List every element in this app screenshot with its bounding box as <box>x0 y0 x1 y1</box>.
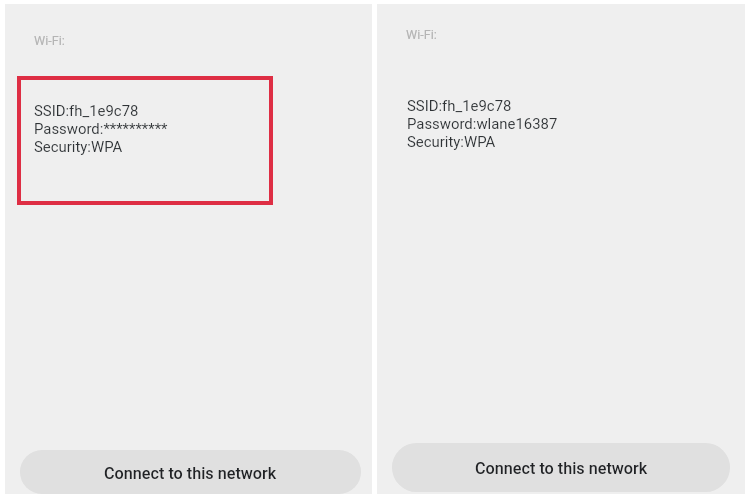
staticText: Wi-Fi: <box>406 28 437 42</box>
staticText: Connect to this network <box>104 464 277 483</box>
staticText: Security:WPA <box>407 133 496 151</box>
staticText: Password:wlane16387 <box>407 115 558 133</box>
staticText: Wi-Fi: <box>34 34 65 48</box>
button[interactable]: Connect to this network <box>20 450 361 494</box>
staticText: SSID:fh_1e9c78 <box>34 102 139 120</box>
staticText: Security:WPA <box>34 138 123 156</box>
staticText: Password:********** <box>34 120 168 138</box>
staticText: Connect to this network <box>475 459 648 478</box>
button[interactable]: Connect to this network <box>392 443 730 492</box>
staticText: SSID:fh_1e9c78 <box>407 97 512 115</box>
